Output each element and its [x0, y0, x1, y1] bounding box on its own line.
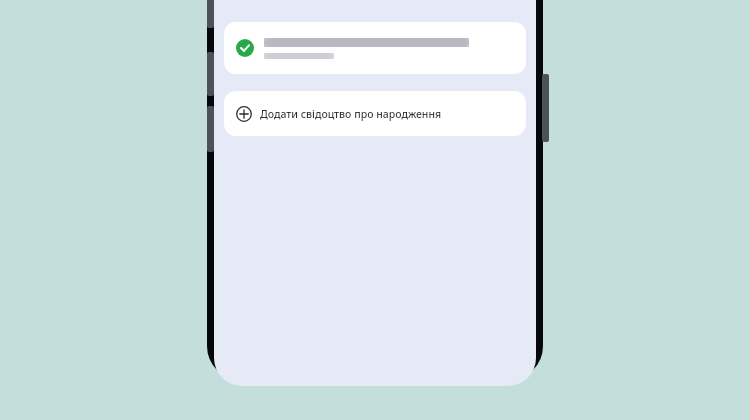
staticText: Додати свідоцтво про народження	[260, 107, 442, 121]
button[interactable]: Особа	[224, 22, 526, 74]
button[interactable]: Додати свідоцтво про народження	[224, 91, 526, 136]
